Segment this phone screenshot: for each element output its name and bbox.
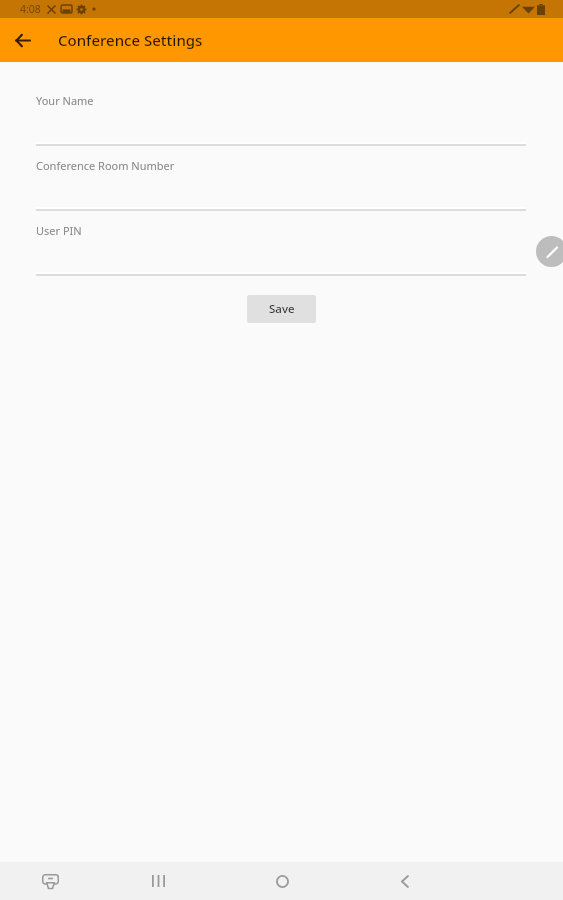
button[interactable]: User PIN [0,223,563,288]
staticText: Conference Room Number [36,158,175,173]
button[interactable]: Back [0,18,44,62]
button[interactable]: Your Name [0,93,563,158]
button[interactable]: Conference Room Number [0,158,563,223]
staticText: User PIN [36,223,82,238]
staticText: Conference Settings [58,30,203,50]
staticText: Your Name [36,93,94,108]
button[interactable]: Save [247,295,316,323]
staticText: 4:08 [20,2,41,16]
staticText: Save [269,301,295,317]
button[interactable]: Recent apps [139,862,177,900]
button[interactable]: Home [263,862,301,900]
button[interactable]: Hide keyboard [31,862,69,900]
button[interactable]: Edit [536,236,563,267]
button[interactable]: Back [386,862,424,900]
